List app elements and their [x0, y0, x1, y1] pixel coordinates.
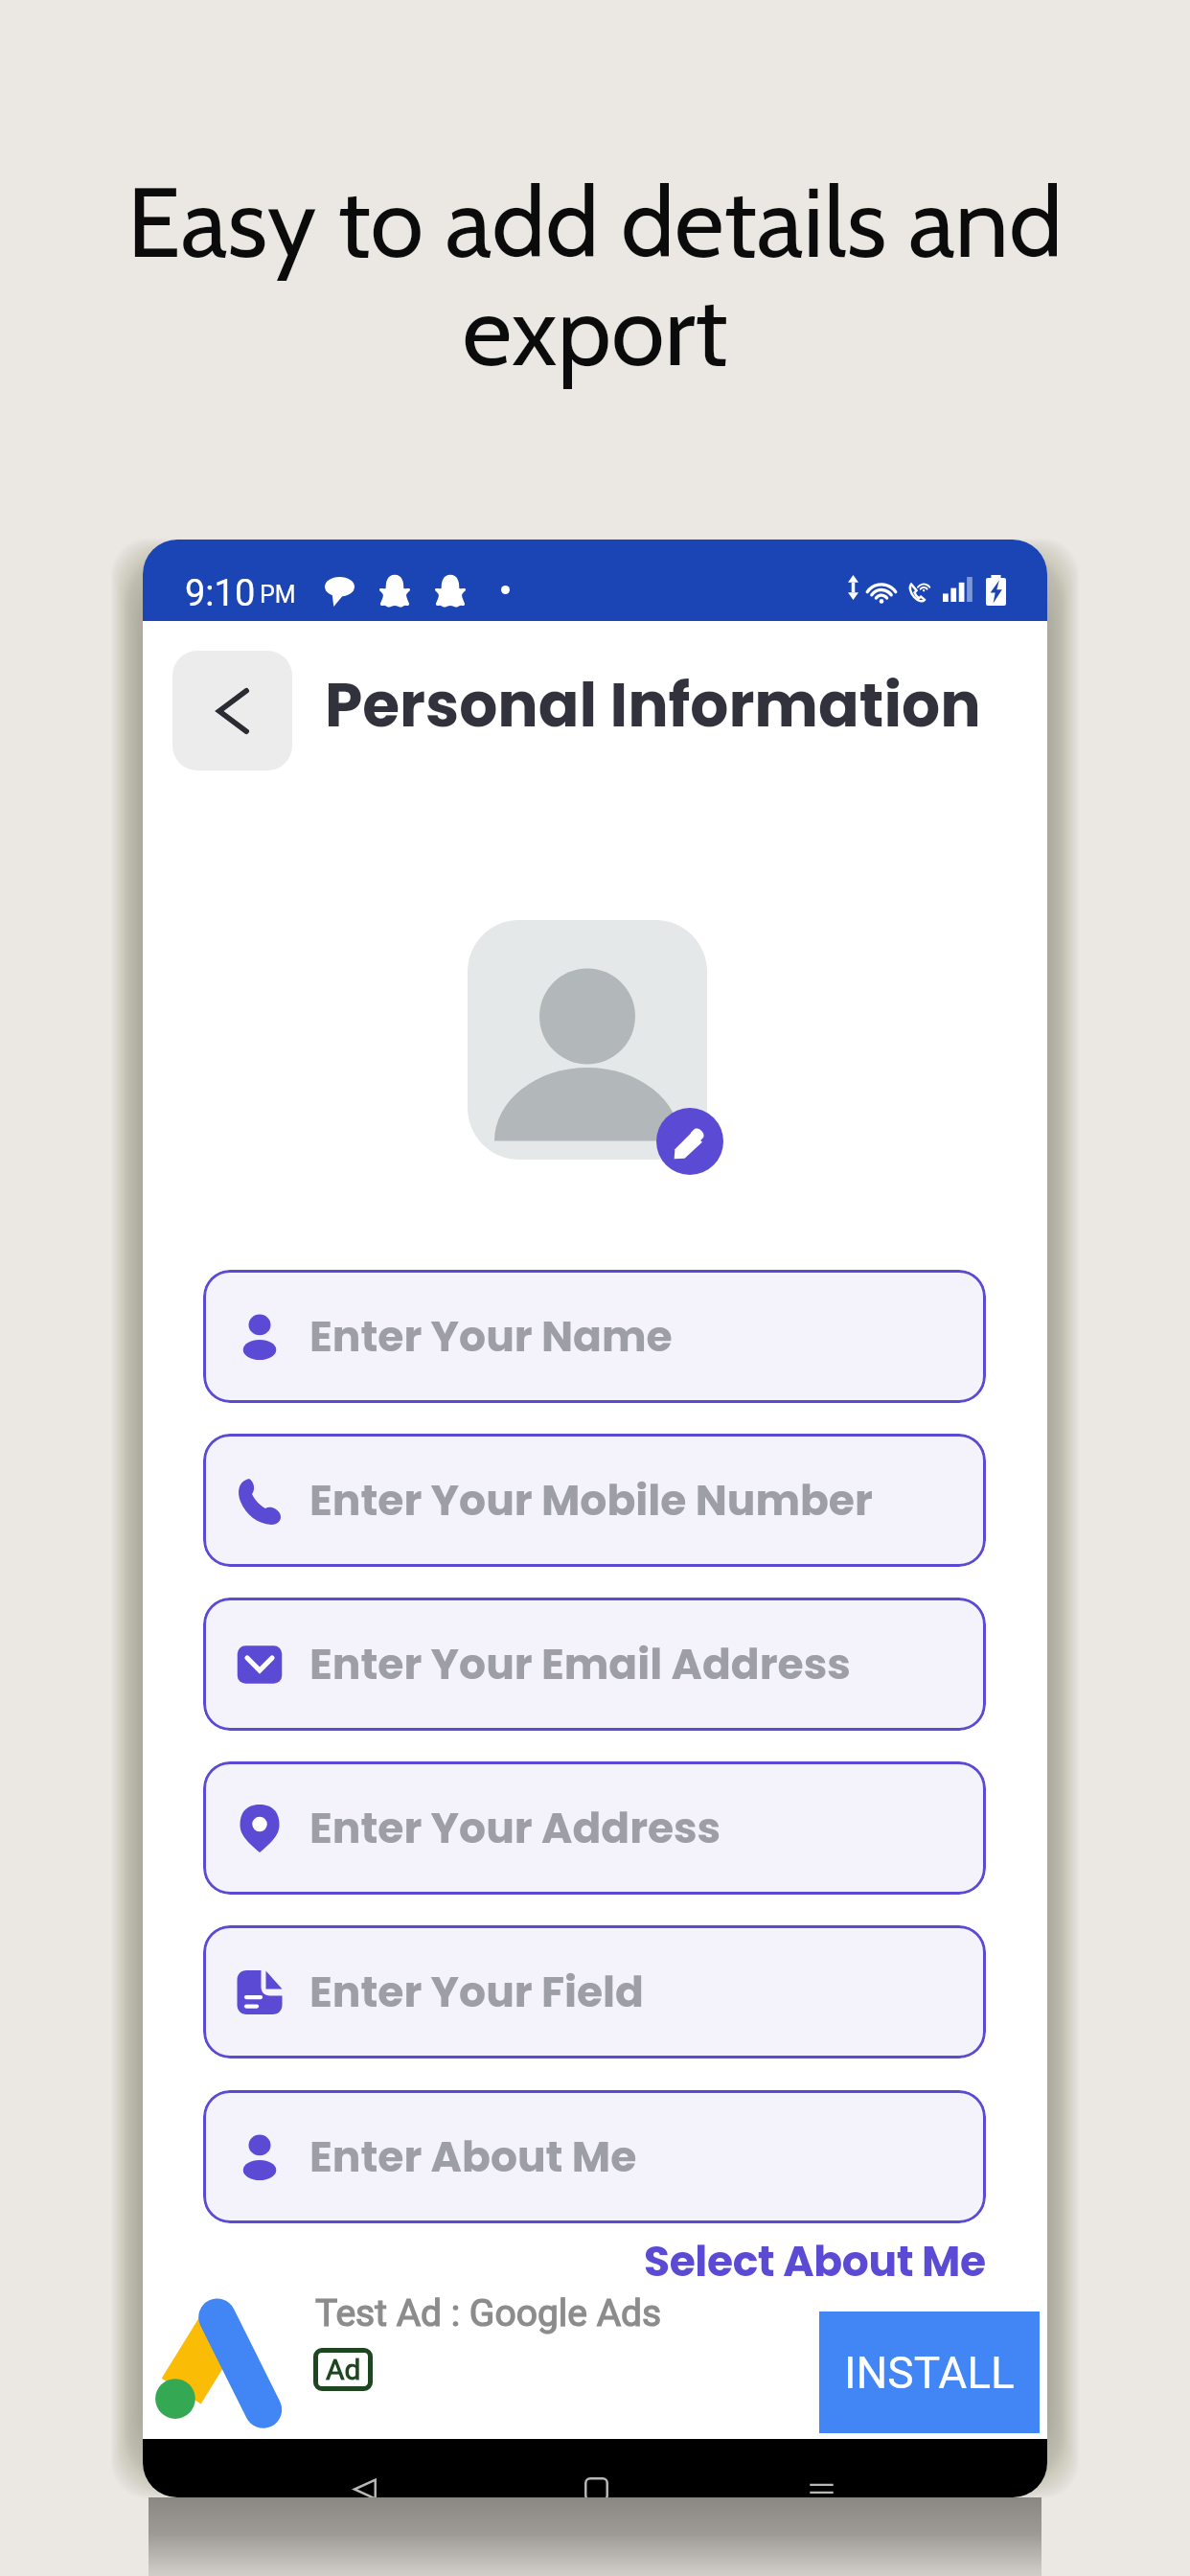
- other: Back: [349, 2473, 380, 2497]
- staticText: Test Ad : Google Ads: [315, 2291, 662, 2335]
- button[interactable]: Enter Your Field: [203, 1925, 986, 2058]
- staticText: Select About Me: [644, 2232, 986, 2291]
- other: Google Ads: [154, 2296, 287, 2424]
- staticText: 9:10: [185, 572, 256, 615]
- other: Recents: [806, 2473, 837, 2497]
- button[interactable]: Profile photo: [468, 920, 707, 1160]
- button[interactable]: Enter Your Mobile Number: [203, 1434, 986, 1567]
- staticText: Enter About Me: [309, 2127, 637, 2187]
- staticText: Ad: [326, 2353, 361, 2386]
- button[interactable]: Edit photo: [656, 1108, 723, 1175]
- button[interactable]: Enter Your Address: [203, 1761, 986, 1895]
- staticText: Personal Information: [325, 663, 981, 747]
- staticText: Enter Your Field: [309, 1963, 644, 2022]
- staticText: Easy to add details and export: [0, 164, 1190, 389]
- button[interactable]: Enter Your Name: [203, 1270, 986, 1403]
- button[interactable]: Enter About Me: [203, 2090, 986, 2223]
- other: Home: [581, 2473, 612, 2497]
- button[interactable]: INSTALL: [819, 2311, 1040, 2433]
- staticText: Enter Your Address: [309, 1799, 721, 1858]
- button[interactable]: Select About Me: [644, 2232, 986, 2291]
- staticText: Enter Your Name: [309, 1307, 673, 1367]
- staticText: Enter Your Email Address: [309, 1635, 851, 1694]
- button[interactable]: Back: [172, 651, 292, 770]
- staticText: INSTALL: [844, 2347, 1015, 2399]
- button[interactable]: Google Ads: [143, 2290, 1047, 2439]
- staticText: PM: [260, 581, 296, 609]
- button[interactable]: Enter Your Email Address: [203, 1598, 986, 1731]
- staticText: Enter Your Mobile Number: [309, 1471, 873, 1530]
